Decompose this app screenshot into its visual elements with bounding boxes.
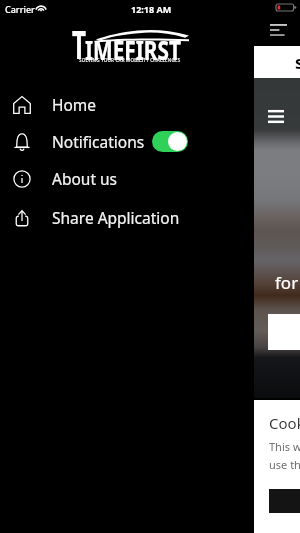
staticText: 12:18 AM [131,3,172,15]
staticText: s [295,51,300,74]
staticText: IMEFIRST [85,31,181,68]
button[interactable]: Share Application [0,199,254,236]
staticText: Share Application [52,207,180,228]
button[interactable]: About us [0,160,254,197]
other: Open navigation [268,110,284,123]
other: Menu [270,24,287,36]
staticText: Notifications [52,131,145,152]
staticText: for [275,271,300,294]
staticText: About us [52,168,118,189]
staticText: Cookie [269,413,300,433]
staticText: SOLVING YOUR CAR MOBILITY CHALLENGES [79,56,181,64]
staticText: Home [52,94,97,115]
button[interactable]: Home [0,86,254,123]
staticText: This website uses cookies to use the sit… [269,439,300,472]
button[interactable]: Notifications toggle [152,131,188,152]
staticText: Carrier [5,3,35,15]
button[interactable]: Notifications [0,123,254,160]
staticText: T [72,17,86,70]
